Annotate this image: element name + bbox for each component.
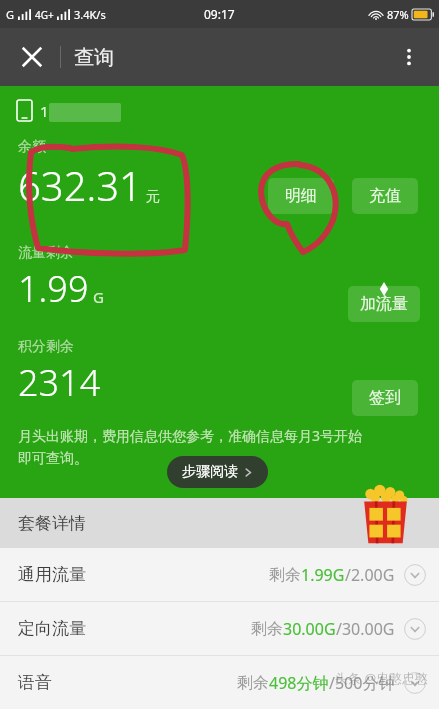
staticText: 充值 <box>369 186 401 206</box>
staticText: 剩余 <box>251 619 283 639</box>
staticText: 元 <box>146 188 160 206</box>
staticText: 积分剩余 <box>18 338 74 356</box>
staticText: 查询 <box>74 45 114 70</box>
staticText: 月头出账期，费用信息供您参考，准确信息每月3号开始 即可查询。 <box>18 426 363 468</box>
button[interactable]: 加流量 <box>348 286 420 322</box>
button[interactable]: Expand 语音 <box>403 671 427 695</box>
button[interactable]: 签到 <box>352 380 418 416</box>
staticText: 定向流量 <box>18 618 86 639</box>
button[interactable]: 语音 <box>0 656 439 709</box>
staticText: 流量剩余 <box>18 244 74 262</box>
button[interactable]: 套餐详情 <box>0 498 439 548</box>
staticText: G <box>6 7 15 22</box>
staticText: 语音 <box>18 672 52 693</box>
button[interactable]: Expand 定向流量 <box>403 617 427 641</box>
staticText: 4G+ <box>35 8 54 22</box>
button[interactable]: 流量红包 <box>359 487 411 545</box>
staticText: 87% <box>387 7 409 22</box>
staticText: 498分钟 <box>269 672 329 694</box>
staticText: 1.99 <box>18 264 89 313</box>
staticText: 632.31 <box>18 158 142 212</box>
staticText: 剩余 <box>269 565 301 585</box>
button[interactable]: Expand 通用流量 <box>403 563 427 587</box>
staticText: 1 <box>40 101 49 121</box>
button[interactable]: 充值 <box>352 178 418 214</box>
staticText: 签到 <box>369 388 401 408</box>
staticText: 步骤阅读 <box>182 463 238 481</box>
button[interactable]: 步骤阅读 <box>167 456 268 488</box>
staticText: 09:17 <box>204 6 235 22</box>
staticText: 2314 <box>18 358 101 407</box>
staticText: 加流量 <box>360 294 408 314</box>
staticText: /2.00G <box>345 564 395 586</box>
button[interactable]: 通用流量 <box>0 548 439 601</box>
staticText: 1.99G <box>301 564 345 586</box>
staticText: 通用流量 <box>18 564 86 585</box>
button[interactable]: 明细 <box>268 178 334 214</box>
staticText: /30.00G <box>336 618 395 640</box>
staticText: 套餐详情 <box>18 513 86 534</box>
staticText: G <box>93 287 104 307</box>
staticText: 明细 <box>285 186 317 206</box>
staticText: 3.4K/s <box>74 7 106 22</box>
staticText: 剩余 <box>237 673 269 693</box>
staticText: 头条 @忠憨忠憨 <box>335 669 429 687</box>
staticText: 余额 <box>18 138 46 156</box>
button[interactable]: More options <box>385 33 433 81</box>
button[interactable]: 定向流量 <box>0 602 439 655</box>
staticText: /500分钟 <box>329 672 395 694</box>
button[interactable]: Close <box>8 33 56 81</box>
staticText: 30.00G <box>283 618 336 640</box>
